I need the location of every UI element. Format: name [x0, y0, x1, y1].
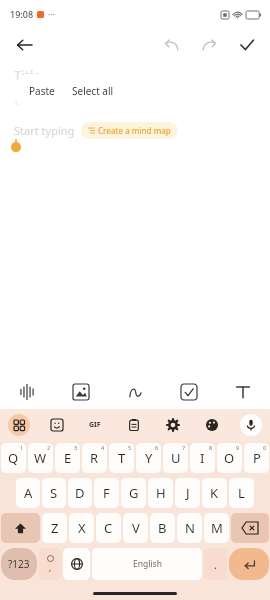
staticText: A: [24, 484, 33, 502]
button[interactable]: Q: [1, 443, 26, 473]
button[interactable]: Emoji and comma: [39, 548, 61, 580]
button[interactable]: Text style: [216, 375, 270, 409]
button[interactable]: Enter: [229, 548, 269, 580]
button[interactable]: K: [202, 478, 227, 508]
button[interactable]: D: [68, 478, 92, 508]
staticText: D: [75, 484, 85, 502]
button[interactable]: Redo: [196, 32, 222, 58]
button[interactable]: .: [204, 548, 227, 580]
staticText: 4: [101, 444, 105, 451]
staticText: V: [132, 519, 140, 537]
staticText: GIF: [89, 420, 101, 430]
staticText: C: [104, 519, 113, 537]
button[interactable]: H: [148, 478, 173, 508]
button[interactable]: Y: [136, 443, 161, 473]
staticText: .: [214, 557, 217, 572]
staticText: Q: [8, 449, 19, 467]
button[interactable]: O: [217, 443, 242, 473]
staticText: X: [78, 519, 86, 537]
staticText: E: [64, 449, 72, 467]
button[interactable]: Shift: [1, 513, 40, 543]
button[interactable]: E: [55, 443, 80, 473]
button[interactable]: Voice input: [231, 409, 270, 441]
staticText: F: [103, 484, 110, 502]
staticText: T: [118, 449, 126, 467]
staticText: Z: [51, 519, 59, 537]
button[interactable]: Create a mind map: [81, 122, 178, 139]
button[interactable]: Image: [54, 375, 108, 409]
button[interactable]: G: [121, 478, 146, 508]
staticText: L: [238, 484, 245, 502]
button[interactable]: Z: [42, 513, 67, 543]
button[interactable]: Themes: [192, 409, 231, 441]
button[interactable]: Checklist: [162, 375, 216, 409]
button[interactable]: R: [82, 443, 107, 473]
button[interactable]: U: [163, 443, 188, 473]
staticText: 7: [182, 444, 186, 451]
staticText: I: [200, 449, 205, 467]
button[interactable]: T: [109, 443, 134, 473]
button[interactable]: F: [94, 478, 119, 508]
staticText: Start typing: [14, 123, 75, 138]
button[interactable]: A: [16, 478, 40, 508]
staticText: 0: [263, 444, 267, 451]
staticText: M: [211, 519, 223, 537]
button[interactable]: B: [150, 513, 175, 543]
staticText: N: [185, 519, 195, 537]
staticText: W: [34, 449, 47, 467]
staticText: English: [133, 558, 162, 570]
staticText: Y: [145, 449, 153, 467]
staticText: P: [253, 449, 261, 467]
staticText: 3: [74, 444, 78, 451]
button[interactable]: Back: [10, 31, 38, 59]
staticText: U: [171, 449, 181, 467]
staticText: 2: [47, 444, 51, 451]
button[interactable]: X: [69, 513, 94, 543]
button[interactable]: Done: [234, 32, 260, 58]
staticText: Create a mind map: [98, 125, 171, 136]
staticText: 5: [128, 444, 132, 451]
button[interactable]: S: [42, 478, 66, 508]
staticText: B: [158, 519, 167, 537]
staticText: ,: [49, 562, 52, 573]
staticText: S: [50, 484, 58, 502]
staticText: ···: [48, 8, 56, 20]
button[interactable]: V: [123, 513, 148, 543]
button[interactable]: M: [204, 513, 229, 543]
button[interactable]: Clipboard: [114, 409, 153, 441]
staticText: 1: [20, 444, 24, 451]
button[interactable]: Settings: [153, 409, 192, 441]
staticText: O: [224, 449, 235, 467]
button[interactable]: Select all: [68, 74, 128, 108]
staticText: Title: [14, 66, 41, 84]
staticText: Paste: [29, 84, 55, 98]
button[interactable]: English: [92, 548, 202, 580]
button[interactable]: C: [96, 513, 121, 543]
staticText: 9: [236, 444, 240, 451]
staticText: R: [90, 449, 99, 467]
staticText: G: [129, 484, 139, 502]
button[interactable]: Undo: [158, 32, 184, 58]
button[interactable]: N: [177, 513, 202, 543]
staticText: ?123: [8, 557, 30, 571]
button[interactable]: Paste: [16, 74, 68, 108]
staticText: H: [156, 484, 166, 502]
button[interactable]: P: [244, 443, 269, 473]
button[interactable]: Audio: [0, 375, 54, 409]
button[interactable]: Stickers: [38, 409, 76, 441]
button[interactable]: L: [229, 478, 254, 508]
button[interactable]: Change language: [63, 548, 90, 580]
staticText: K: [210, 484, 219, 502]
button[interactable]: ?123: [1, 548, 37, 580]
button[interactable]: I: [190, 443, 215, 473]
button[interactable]: GIF: [76, 409, 114, 441]
button[interactable]: Draw: [108, 375, 162, 409]
staticText: 8: [209, 444, 213, 451]
button[interactable]: Apps: [0, 409, 38, 441]
staticText: Select all: [72, 84, 114, 98]
button[interactable]: J: [175, 478, 200, 508]
button[interactable]: Backspace: [231, 513, 269, 543]
button[interactable]: W: [28, 443, 53, 473]
staticText: 19:08: [10, 8, 34, 20]
